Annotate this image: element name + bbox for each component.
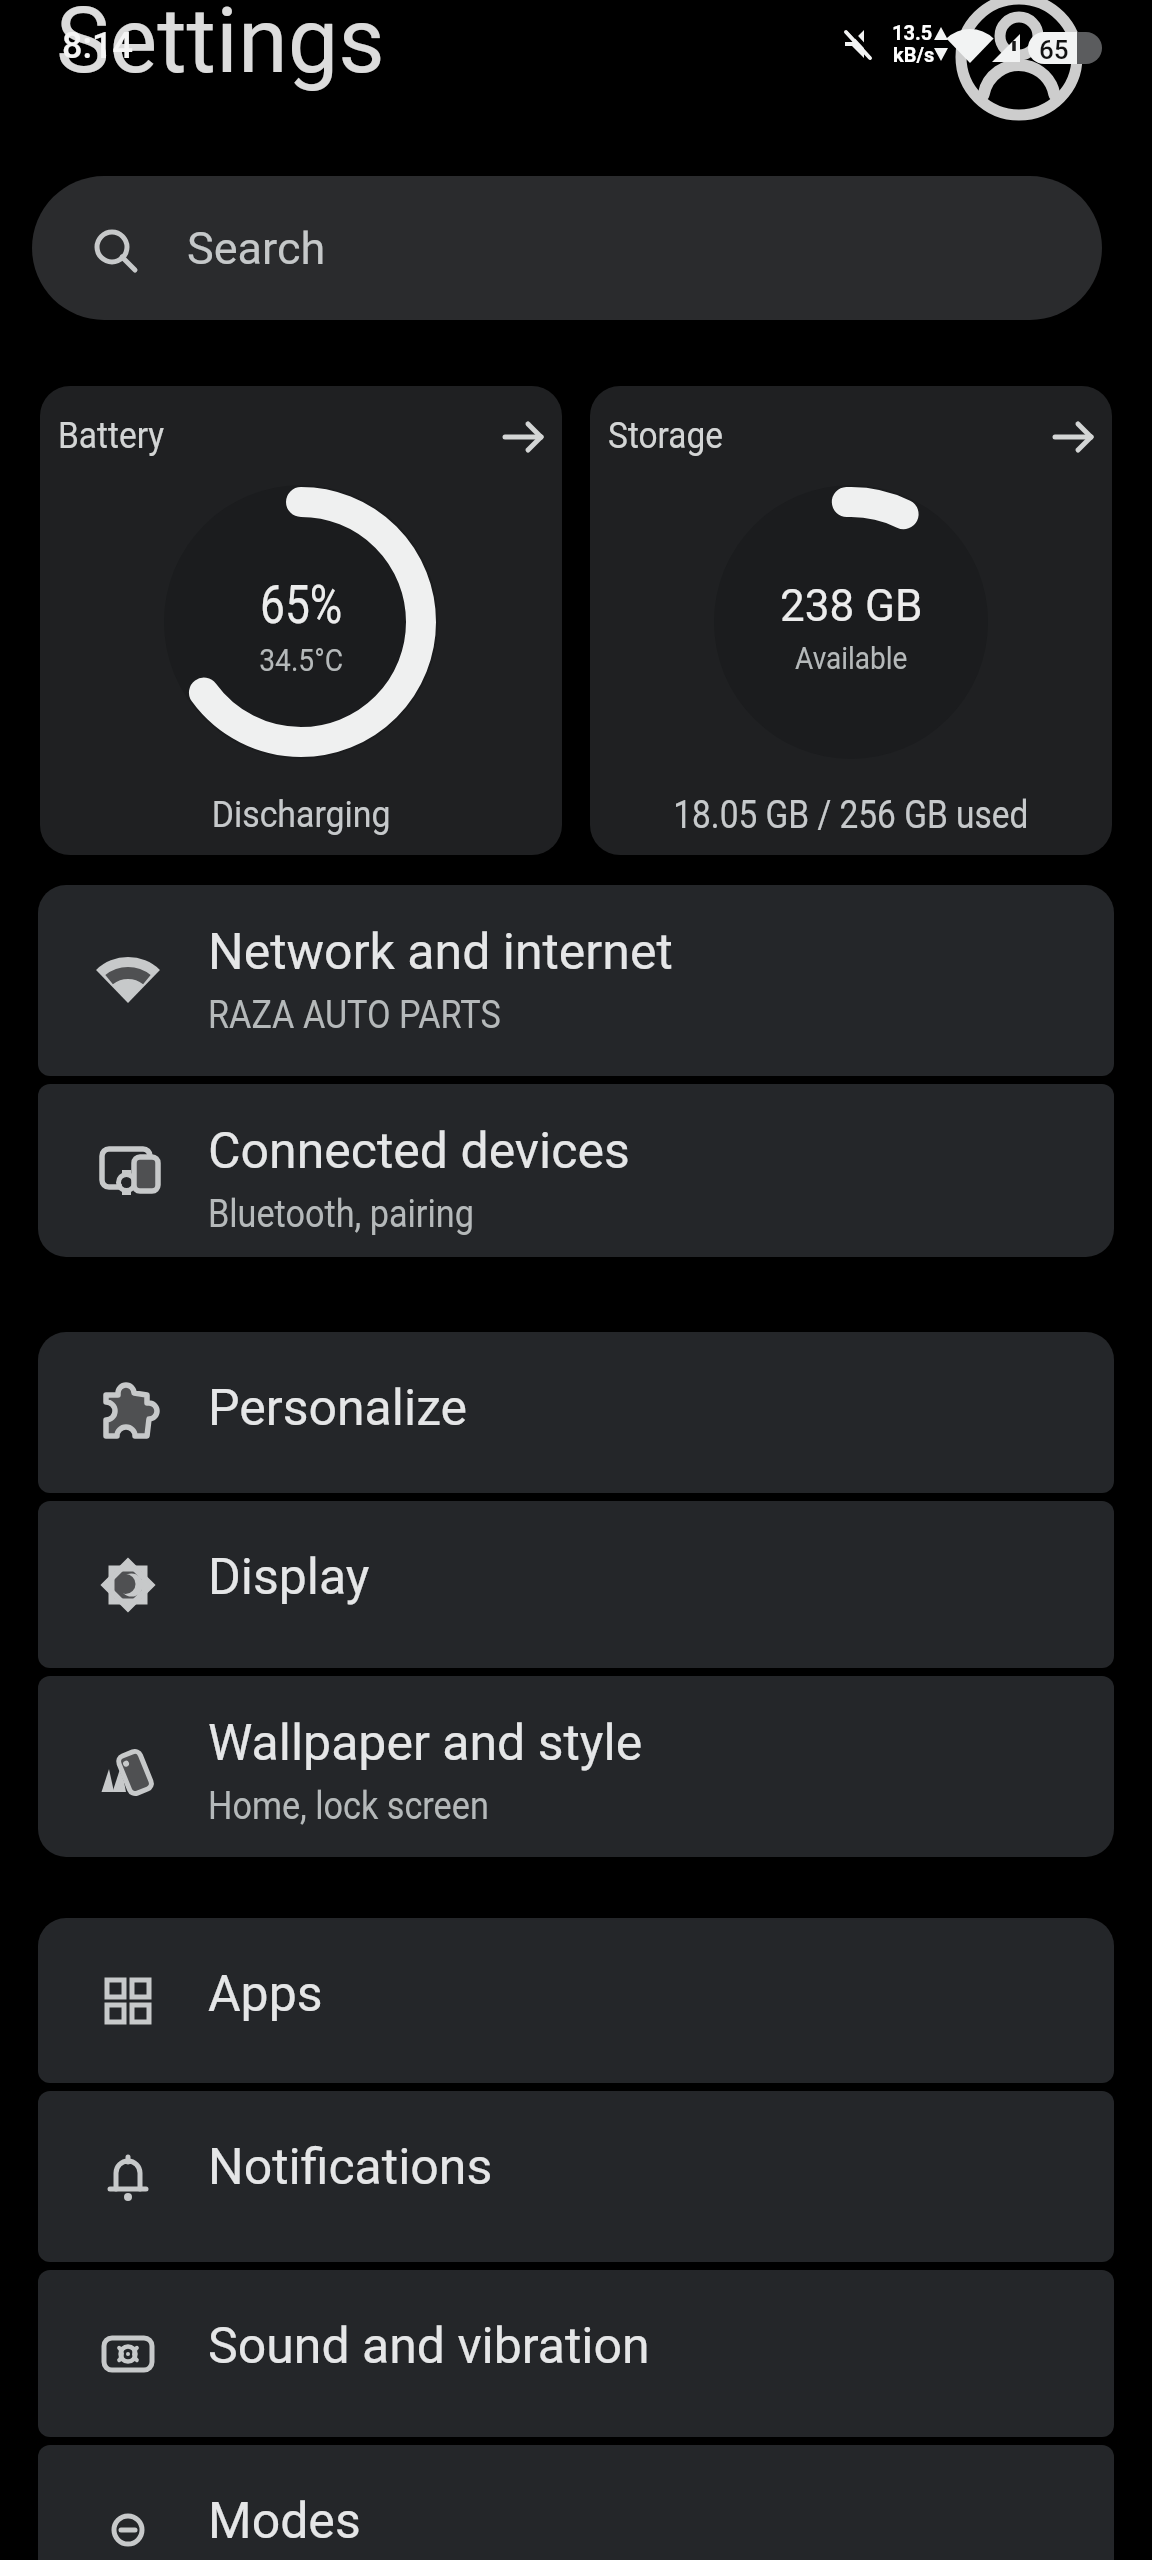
staticText: Apps (208, 1965, 323, 2024)
staticText: 65% (260, 573, 343, 636)
staticText: 34.5°C (259, 642, 344, 678)
button[interactable]: Modes (38, 2445, 1114, 2560)
staticText: Notifications (208, 2138, 493, 2197)
button[interactable]: Display (38, 1501, 1114, 1668)
staticText: 8:14 (62, 25, 133, 67)
staticText: kB/s (893, 43, 935, 66)
staticText: 65 (1039, 35, 1069, 65)
staticText: Personalize (208, 1379, 468, 1438)
staticText: 18.05 GB / 256 GB used (673, 793, 1029, 838)
staticText: Wallpaper and style (208, 1714, 643, 1773)
button[interactable]: Sound and vibration (38, 2270, 1114, 2437)
staticText: Display (208, 1548, 370, 1607)
staticText: Network and internet (208, 923, 673, 982)
staticText: Bluetooth, pairing (208, 1192, 474, 1237)
button[interactable] (955, 0, 1083, 121)
staticText: Home, lock screen (208, 1784, 489, 1829)
staticText: Sound and vibration (208, 2317, 650, 2376)
staticText: Battery (58, 415, 165, 457)
staticText: RAZA AUTO PARTS (208, 993, 501, 1038)
button[interactable]: Search (32, 176, 1102, 320)
button[interactable]: Wallpaper and style (38, 1676, 1114, 1857)
staticText: Storage (608, 415, 723, 457)
staticText: Modes (208, 2492, 361, 2551)
staticText: Connected devices (208, 1122, 630, 1181)
staticText: Settings (56, 0, 385, 94)
button[interactable]: Personalize (38, 1332, 1114, 1493)
staticText: Available (795, 639, 908, 677)
button[interactable]: Notifications (38, 2091, 1114, 2262)
staticText: Search (187, 222, 326, 275)
button[interactable]: Network and internet (38, 885, 1114, 1076)
staticText: 238 GB (780, 580, 923, 632)
button[interactable]: Connected devices (38, 1084, 1114, 1257)
staticText: Discharging (212, 794, 391, 836)
button[interactable]: Battery (40, 386, 562, 855)
button[interactable]: Apps (38, 1918, 1114, 2083)
staticText: 13.5 (892, 21, 933, 44)
button[interactable]: Storage (590, 386, 1112, 855)
